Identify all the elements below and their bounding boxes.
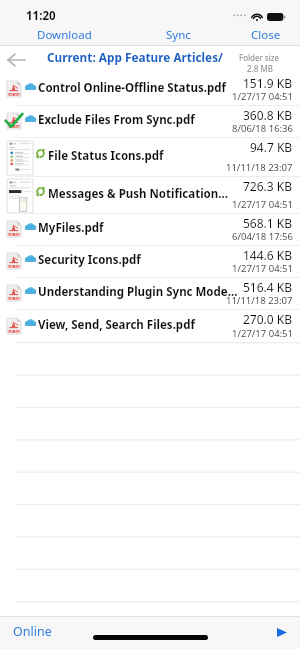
button[interactable]: Close: [239, 26, 300, 44]
button[interactable]: File Status Icons.pdf: [0, 138, 300, 177]
staticText: 144.6 KB: [243, 247, 293, 263]
staticText: Current: App Feature Articles/: [47, 49, 223, 65]
staticText: 568.1 KB: [243, 215, 293, 231]
button[interactable]: Exclude Files From Sync.pdf: [0, 106, 300, 138]
staticText: 360.8 KB: [243, 107, 293, 123]
staticText: Messages & Push Notification...: [48, 186, 238, 202]
staticText: MyFiles.pdf: [38, 220, 238, 236]
staticText: 516.4 KB: [243, 279, 293, 295]
staticText: Folder size: [239, 52, 280, 63]
staticText: 11/11/18 23:07: [226, 161, 293, 174]
button[interactable]: Play: [272, 622, 292, 642]
staticText: File Status Icons.pdf: [48, 148, 238, 164]
staticText: Security Icons.pdf: [38, 252, 238, 268]
staticText: 11/11/18 23:07: [226, 294, 293, 307]
staticText: 270.0 KB: [243, 311, 293, 327]
staticText: 1/27/17 04:51: [232, 262, 293, 275]
staticText: 1/27/17 04:51: [232, 90, 293, 103]
button[interactable]: Download: [0, 26, 104, 44]
button[interactable]: Back: [0, 46, 33, 74]
staticText: Online: [13, 623, 52, 640]
staticText: Close: [251, 27, 281, 43]
button[interactable]: Messages & Push Notification...: [0, 177, 300, 214]
button[interactable]: Security Icons.pdf: [0, 246, 300, 278]
staticText: Download: [37, 27, 92, 43]
staticText: Exclude Files From Sync.pdf: [38, 112, 238, 128]
staticText: 94.7 KB: [250, 139, 293, 155]
staticText: 8/06/18 16:36: [232, 122, 293, 135]
staticText: View, Send, Search Files.pdf: [38, 317, 238, 333]
staticText: Sync: [166, 27, 191, 43]
button[interactable]: View, Send, Search Files.pdf: [0, 310, 300, 343]
staticText: Control Online-Offline Status.pdf: [38, 80, 238, 96]
staticText: 11:20: [26, 8, 56, 24]
staticText: 726.3 KB: [243, 178, 293, 194]
button[interactable]: Sync: [154, 26, 203, 44]
staticText: 1/27/17 04:51: [232, 327, 293, 340]
button[interactable]: Control Online-Offline Status.pdf: [0, 74, 300, 106]
button[interactable]: Online: [0, 620, 64, 643]
staticText: 151.9 KB: [243, 75, 293, 91]
staticText: Understanding Plugin Sync Mode...: [38, 284, 238, 300]
button[interactable]: MyFiles.pdf: [0, 214, 300, 246]
staticText: 2.8 MB: [247, 63, 273, 74]
staticText: 1/27/17 04:51: [232, 198, 293, 211]
staticText: 6/04/18 17:56: [232, 230, 293, 243]
button[interactable]: Understanding Plugin Sync Mode...: [0, 278, 300, 310]
